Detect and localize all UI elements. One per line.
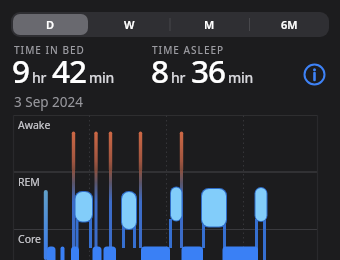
staticText: min <box>228 68 253 87</box>
staticText: TIME IN BED <box>14 43 85 57</box>
staticText: hr <box>32 68 47 87</box>
staticText: 8 <box>151 49 169 92</box>
staticText: 6M <box>281 17 298 32</box>
staticText: TIME ASLEEP <box>152 43 225 57</box>
staticText: W <box>124 17 135 32</box>
staticText: D <box>46 17 55 32</box>
staticText: Awake <box>18 118 51 132</box>
button[interactable]: 6M <box>251 14 327 35</box>
staticText: 42 <box>52 49 87 92</box>
staticText: hr <box>171 68 186 87</box>
button[interactable]: W <box>92 14 167 35</box>
staticText: M <box>204 17 215 32</box>
staticText: 9 <box>12 49 30 92</box>
button[interactable]: D <box>13 14 88 35</box>
staticText: min <box>89 68 114 87</box>
staticText: 3 Sep 2024 <box>14 93 83 111</box>
button[interactable] <box>303 63 326 86</box>
staticText: Core <box>18 232 42 246</box>
staticText: REM <box>18 175 40 189</box>
staticText: 36 <box>191 49 226 92</box>
button[interactable]: M <box>171 14 247 35</box>
